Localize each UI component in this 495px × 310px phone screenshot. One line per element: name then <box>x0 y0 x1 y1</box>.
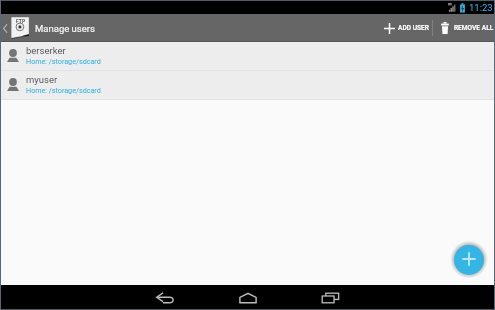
button[interactable]: myuser <box>0 71 495 99</box>
button[interactable]: Recent apps <box>289 285 372 310</box>
button[interactable]: Home <box>206 285 289 310</box>
staticText: REMOVE ALL <box>454 24 494 32</box>
button[interactable]: REMOVE ALL <box>441 14 494 42</box>
staticText: berserker <box>26 45 66 56</box>
staticText: 11:23 <box>469 2 493 13</box>
button[interactable]: Navigate up <box>0 14 30 42</box>
staticText: ADD USER <box>398 24 429 32</box>
staticText: Manage users <box>35 23 95 34</box>
staticText: myuser <box>26 74 58 85</box>
button[interactable]: ADD USER <box>384 14 429 42</box>
staticText: Home: /storage/sdcard <box>26 57 101 65</box>
staticText: Home: /storage/sdcard <box>26 86 101 94</box>
button[interactable]: berserker <box>0 42 495 70</box>
button[interactable]: Back <box>123 285 206 310</box>
button[interactable]: Add user <box>454 245 484 275</box>
staticText: FTP <box>16 18 26 24</box>
